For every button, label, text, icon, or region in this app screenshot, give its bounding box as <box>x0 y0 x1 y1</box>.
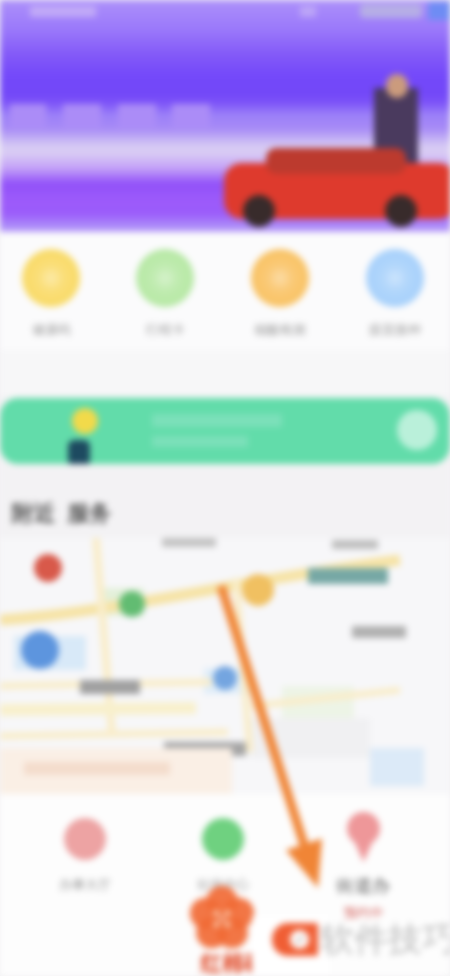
staticText: 红棉砖 <box>200 950 266 976</box>
button[interactable] <box>190 892 254 950</box>
button[interactable]: 附近 <box>11 500 111 528</box>
button[interactable]: 办事大厅 <box>45 818 125 892</box>
button[interactable]: 行程卡 <box>120 249 210 337</box>
button[interactable]: 疫苗接种 <box>350 249 440 337</box>
staticText: 街道办 <box>336 875 390 898</box>
button[interactable] <box>0 398 450 464</box>
staticText: 服务 <box>67 500 111 528</box>
button[interactable]: 街道办 <box>322 812 404 920</box>
button[interactable]: 社保中心 <box>183 818 263 892</box>
button[interactable]: 健康码 <box>6 249 96 337</box>
staticText: 健康码 <box>32 321 71 337</box>
staticText: 预约中 <box>344 904 383 920</box>
staticText: 软件技巧 <box>320 918 450 961</box>
staticText: 办事大厅 <box>59 876 111 892</box>
staticText: 疫苗接种 <box>369 321 421 337</box>
staticText: 社保中心 <box>197 876 249 892</box>
button[interactable]: 核酸检测 <box>235 249 325 337</box>
button[interactable] <box>0 538 450 794</box>
staticText: 行程卡 <box>146 321 185 337</box>
staticText: 附近 <box>11 500 55 528</box>
staticText: 核酸检测 <box>254 321 306 337</box>
